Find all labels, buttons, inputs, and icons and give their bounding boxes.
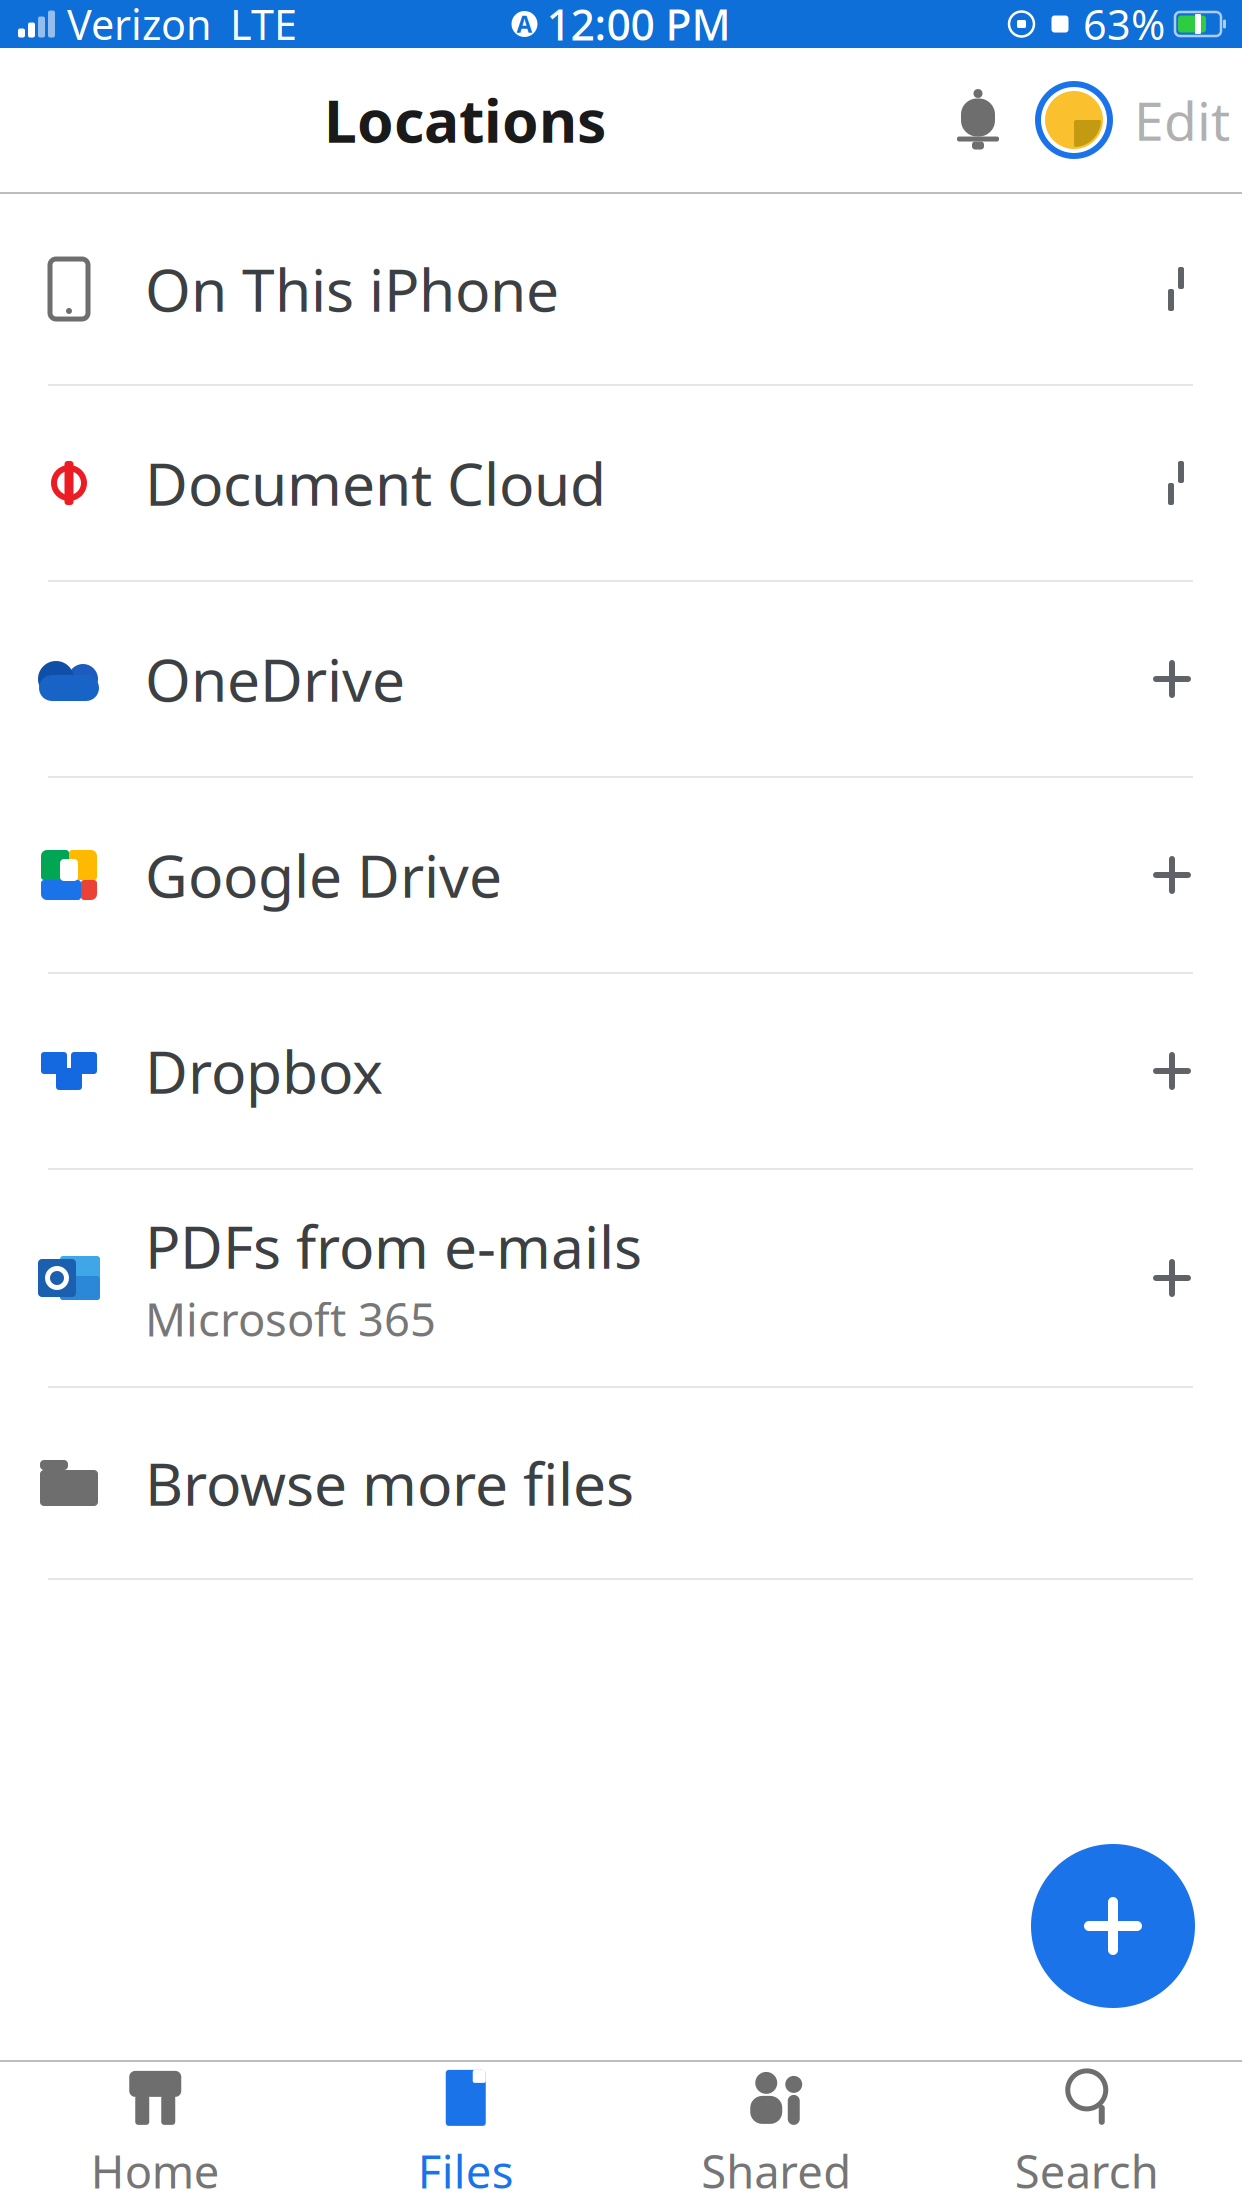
staticText: PDFs from e-mails — [145, 1207, 642, 1285]
button[interactable]: OneDrive — [0, 582, 1242, 776]
staticText: Home — [91, 2141, 220, 2201]
button[interactable]: On This iPhone — [0, 194, 1242, 384]
staticText: Browse more files — [145, 1444, 634, 1522]
staticText: Search — [1015, 2141, 1159, 2201]
button[interactable]: Create — [1023, 1836, 1203, 2016]
button[interactable]: Shared — [621, 2062, 931, 2208]
staticText: Google Drive — [145, 836, 502, 914]
button[interactable]: Search — [931, 2062, 1242, 2208]
staticText: Verizon — [67, 0, 212, 51]
staticText: Locations — [324, 81, 606, 159]
button[interactable]: Files — [310, 2062, 621, 2208]
button[interactable]: Edit — [1122, 70, 1242, 170]
staticText: 63% — [1083, 0, 1165, 51]
staticText: Shared — [701, 2141, 851, 2201]
staticText: Document Cloud — [145, 444, 606, 522]
button[interactable]: Dropbox — [0, 974, 1242, 1168]
staticText: LTE — [230, 0, 297, 51]
button[interactable]: Account storage — [1026, 70, 1122, 170]
button[interactable]: Google Drive — [0, 778, 1242, 972]
staticText: Edit — [1134, 85, 1230, 155]
staticText: Files — [418, 2141, 514, 2201]
button[interactable]: Browse more files — [0, 1388, 1242, 1578]
staticText: A — [516, 9, 532, 39]
button[interactable]: PDFs from e-mails — [0, 1170, 1242, 1386]
staticText: Dropbox — [145, 1032, 383, 1110]
button[interactable]: Notifications — [930, 70, 1026, 170]
staticText: 12:00 PM — [546, 0, 730, 52]
staticText: On This iPhone — [145, 250, 559, 328]
button[interactable]: Document Cloud — [0, 386, 1242, 580]
staticText: OneDrive — [145, 640, 405, 718]
button[interactable]: Home — [0, 2062, 310, 2208]
staticText: Microsoft 365 — [145, 1289, 436, 1349]
